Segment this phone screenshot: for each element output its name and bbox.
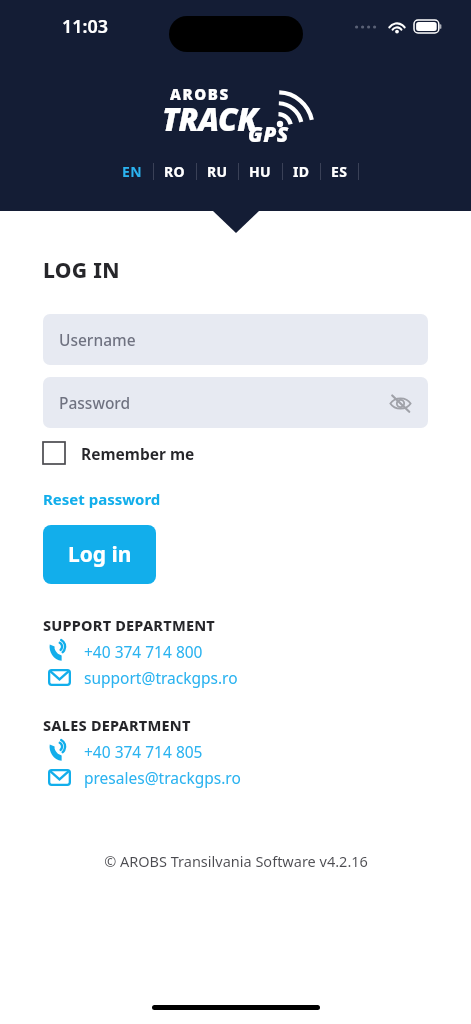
staticText: ID (293, 162, 310, 181)
staticText: HU (249, 162, 272, 181)
staticText: GPS (248, 120, 289, 149)
staticText: presales@trackgps.ro (84, 767, 241, 788)
button[interactable]: support@trackgps.ro (43, 666, 238, 689)
staticText: © AROBS Transilvania Software v4.2.16 (104, 851, 368, 871)
button[interactable]: ID (283, 158, 320, 185)
button[interactable]: Password (43, 377, 428, 428)
staticText: RU (207, 162, 228, 181)
staticText: +40 374 714 800 (84, 641, 203, 662)
staticText: TRACK (162, 98, 258, 140)
staticText: RO (164, 162, 186, 181)
staticText: 11:03 (62, 14, 109, 39)
staticText: Log in (68, 540, 132, 569)
button[interactable]: +40 374 714 800 (43, 640, 203, 662)
button[interactable]: RO (154, 158, 196, 185)
button[interactable]: Log in (43, 525, 156, 584)
staticText: EN (122, 162, 143, 181)
staticText: ES (331, 162, 348, 181)
button[interactable]: ES (321, 158, 358, 185)
staticText: SUPPORT DEPARTMENT (43, 615, 215, 635)
staticText: SALES DEPARTMENT (43, 715, 191, 735)
button[interactable]: EN (112, 158, 153, 185)
button[interactable]: +40 374 714 805 (43, 740, 203, 762)
staticText: support@trackgps.ro (84, 667, 238, 688)
button[interactable]: HU (239, 158, 282, 185)
staticText: Reset password (43, 489, 161, 509)
button[interactable]: Username (43, 314, 428, 365)
button[interactable]: RU (197, 158, 238, 185)
button[interactable]: Remember me (43, 442, 195, 464)
button[interactable]: presales@trackgps.ro (43, 766, 241, 789)
staticText: LOG IN (43, 256, 120, 285)
staticText: Password (59, 392, 131, 413)
button[interactable]: Show password (384, 387, 416, 419)
staticText: +40 374 714 805 (84, 741, 203, 762)
staticText: AROBS (170, 84, 230, 104)
staticText: Username (59, 329, 136, 350)
staticText: Remember me (81, 443, 195, 464)
button[interactable]: Reset password (43, 489, 161, 509)
